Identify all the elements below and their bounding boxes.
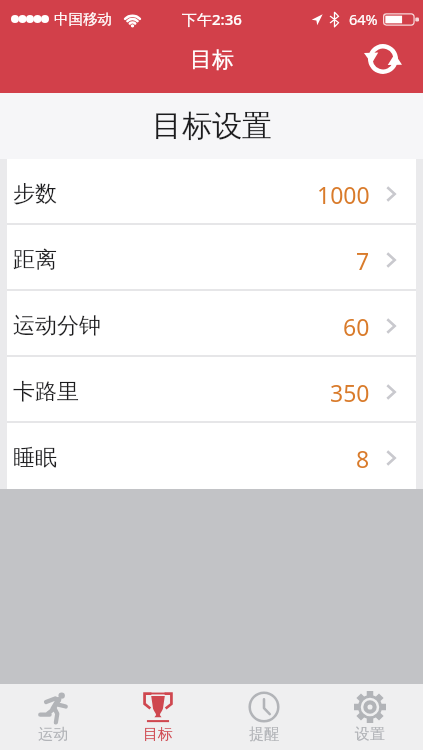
button[interactable]: 卡路里 (7, 357, 416, 423)
staticText: 60 (343, 311, 370, 342)
staticText: 64% (349, 9, 378, 29)
staticText: 8 (356, 443, 370, 474)
staticText: 下午2:36 (182, 9, 242, 29)
staticText: 设置 (355, 725, 385, 744)
staticText: 距离 (13, 246, 57, 274)
button[interactable]: 运动分钟 (7, 291, 416, 357)
staticText: 运动 (38, 725, 68, 744)
staticText: 卡路里 (13, 378, 79, 406)
staticText: 睡眠 (13, 444, 57, 472)
staticText: 目标 (190, 46, 234, 74)
staticText: 350 (330, 377, 370, 408)
button[interactable]: 步数 (7, 159, 416, 225)
staticText: 中国移动 (54, 10, 112, 28)
staticText: 7 (356, 245, 370, 276)
button[interactable]: 设置 (317, 684, 423, 750)
button[interactable]: 运动 (0, 684, 105, 750)
button[interactable]: 目标 (105, 684, 211, 750)
button[interactable]: 提醒 (211, 684, 317, 750)
staticText: 提醒 (249, 725, 279, 744)
staticText: 目标设置 (152, 107, 272, 145)
staticText: 1000 (317, 179, 370, 210)
button[interactable]: 睡眠 (7, 423, 416, 489)
button[interactable]: Refresh (360, 36, 406, 82)
staticText: 运动分钟 (13, 312, 101, 340)
staticText: 目标 (143, 725, 173, 744)
button[interactable]: 距离 (7, 225, 416, 291)
staticText: 步数 (13, 180, 57, 208)
